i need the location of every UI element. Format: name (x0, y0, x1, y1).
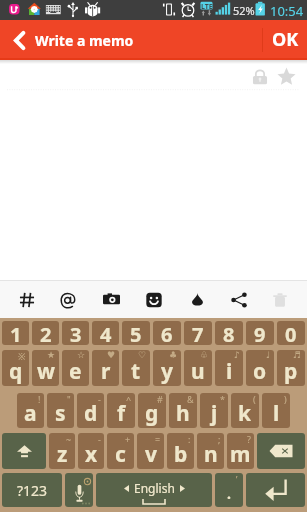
staticText: ’ (236, 474, 238, 485)
staticText: = (155, 433, 161, 445)
staticText: ★ (47, 350, 56, 360)
staticText: ^ (126, 393, 132, 405)
button[interactable]: 2 (32, 321, 59, 345)
button[interactable]: ♣ (153, 350, 181, 386)
staticText: 5 (130, 321, 142, 345)
staticText: ) (284, 393, 287, 405)
staticText: ; (218, 433, 221, 445)
button[interactable]: # (138, 393, 166, 428)
button[interactable]: ♥ (92, 350, 119, 386)
button[interactable]: & (169, 393, 197, 428)
staticText: Write a memo (35, 31, 134, 50)
staticText: p (284, 357, 298, 386)
button[interactable]: + (107, 433, 134, 469)
staticText: : (188, 433, 191, 445)
staticText: q (9, 357, 23, 386)
button[interactable]: Delete (261, 281, 299, 318)
button[interactable]: ★ (32, 350, 59, 386)
button[interactable]: - (77, 393, 104, 428)
staticText: 7 (192, 321, 204, 345)
button[interactable]: Voice input (65, 473, 93, 507)
button[interactable]: * (200, 393, 228, 428)
button[interactable]: ♪ (215, 350, 243, 386)
staticText: i (226, 357, 233, 386)
button[interactable]: OK (263, 20, 307, 60)
button[interactable]: Lock memo (252, 69, 268, 85)
button[interactable]: Enter (246, 473, 305, 507)
staticText: ? (247, 433, 251, 445)
button[interactable]: Ink colour (178, 281, 216, 318)
staticText: w (37, 357, 55, 386)
staticText: " (67, 393, 71, 405)
staticText: 1 (10, 321, 22, 345)
staticText: ♬ (293, 350, 302, 360)
button[interactable]: ’ (215, 473, 243, 507)
staticText: ※ (18, 350, 26, 362)
staticText: 4 (100, 321, 112, 345)
staticText: ( (253, 393, 256, 405)
button[interactable]: ♧ (184, 350, 212, 386)
staticText: h (176, 399, 190, 428)
button[interactable]: ♩ (246, 350, 274, 386)
button[interactable]: ^ (107, 393, 135, 428)
button[interactable]: ♬ (277, 350, 305, 386)
button[interactable]: ; (197, 433, 224, 469)
button[interactable]: Emoji (135, 281, 173, 318)
staticText: s (55, 399, 66, 428)
button[interactable]: Mention (49, 281, 87, 318)
button[interactable]: ♡ (122, 350, 150, 386)
button[interactable]: 6 (153, 321, 181, 345)
button[interactable]: Camera (92, 281, 130, 318)
staticText: z (57, 440, 68, 469)
button[interactable]: 9 (246, 321, 274, 345)
staticText: English (134, 480, 175, 496)
button[interactable]: ( (231, 393, 259, 428)
staticText: . (227, 484, 231, 503)
staticText: LTE (201, 2, 213, 12)
button[interactable]: 5 (122, 321, 150, 345)
staticText: m (230, 440, 251, 469)
button[interactable]: - (78, 433, 104, 469)
button[interactable]: 0 (277, 321, 305, 345)
staticText: f (117, 399, 126, 428)
button[interactable]: = (137, 433, 164, 469)
staticText: y (161, 357, 173, 386)
button[interactable]: Favourite (277, 67, 296, 86)
button[interactable]: 1 (2, 321, 29, 345)
button[interactable]: English (96, 473, 212, 507)
button[interactable]: 8 (215, 321, 243, 345)
staticText: ♡ (138, 350, 147, 360)
staticText: ♧ (200, 350, 209, 360)
staticText: l (273, 399, 280, 428)
staticText: 3 (70, 321, 82, 345)
button[interactable]: ※ (2, 350, 29, 386)
button[interactable]: ~ (49, 433, 75, 469)
staticText: OK (272, 27, 299, 52)
staticText: ! (38, 393, 41, 405)
staticText: ♪ (234, 350, 240, 360)
button[interactable]: 7 (184, 321, 212, 345)
staticText: o (253, 357, 267, 386)
button[interactable]: Share (220, 281, 258, 318)
staticText: 52% (233, 3, 255, 18)
button[interactable]: : (167, 433, 194, 469)
button[interactable]: ) (262, 393, 290, 428)
button[interactable]: 4 (92, 321, 119, 345)
button[interactable]: ☆ (62, 350, 89, 386)
button[interactable]: Hashtag (8, 281, 46, 318)
button[interactable]: Back (0, 20, 33, 60)
button[interactable]: Shift (2, 433, 46, 469)
staticText: g (145, 399, 159, 428)
staticText: 6 (161, 321, 173, 345)
button[interactable]: ! (17, 393, 44, 428)
staticText: u (191, 357, 205, 386)
button[interactable]: 3 (62, 321, 89, 345)
staticText: 10:54 (270, 2, 304, 20)
button[interactable]: ? (227, 433, 254, 469)
button[interactable]: ?123 (2, 473, 62, 507)
staticText: a (24, 399, 37, 428)
button[interactable]: " (47, 393, 74, 428)
staticText: - (98, 393, 101, 405)
staticText: 2 (40, 321, 52, 345)
button[interactable]: Backspace (257, 433, 305, 469)
